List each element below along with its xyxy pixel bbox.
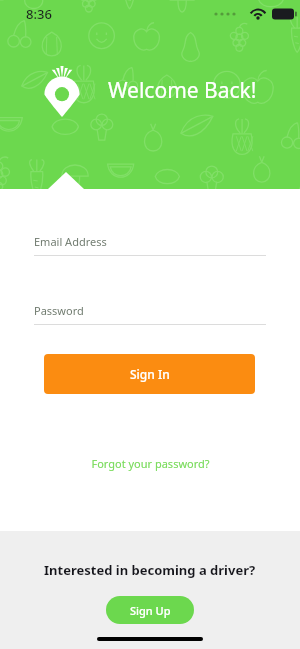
button[interactable]: Forgot your password? bbox=[85, 450, 216, 477]
button[interactable]: Email Address bbox=[34, 234, 266, 256]
button[interactable]: Sign In bbox=[44, 354, 255, 394]
staticText: Sign Up bbox=[130, 603, 171, 618]
staticText: 8:36 bbox=[26, 5, 52, 23]
staticText: Welcome Back! bbox=[108, 76, 257, 105]
other: App logo bbox=[40, 62, 84, 118]
button[interactable]: Password bbox=[34, 303, 266, 325]
staticText: Interested in becoming a driver? bbox=[44, 561, 256, 579]
staticText: Forgot your password? bbox=[91, 456, 210, 471]
staticText: Sign In bbox=[130, 366, 170, 382]
staticText: Email Address bbox=[34, 234, 107, 249]
staticText: Password bbox=[34, 303, 84, 318]
button[interactable]: Sign Up bbox=[106, 596, 194, 624]
